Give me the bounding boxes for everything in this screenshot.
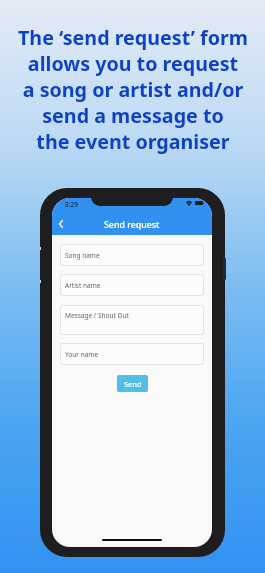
- button[interactable]: Your name: [60, 343, 204, 365]
- staticText: Send request: [104, 219, 160, 231]
- staticText: Your name: [65, 350, 99, 359]
- staticText: Artist name: [65, 281, 101, 290]
- staticText: Song name: [65, 251, 100, 260]
- staticText: Message / Shout Out: [65, 311, 129, 320]
- staticText: The ‘send request’ form allows you to re…: [18, 24, 248, 155]
- staticText: Send: [124, 379, 142, 389]
- button[interactable]: Back: [54, 215, 68, 232]
- button[interactable]: Send: [117, 375, 148, 392]
- button[interactable]: Song name: [60, 244, 204, 266]
- button[interactable]: Message / Shout Out: [60, 305, 204, 335]
- staticText: 5:29: [65, 200, 78, 209]
- button[interactable]: Artist name: [60, 274, 204, 296]
